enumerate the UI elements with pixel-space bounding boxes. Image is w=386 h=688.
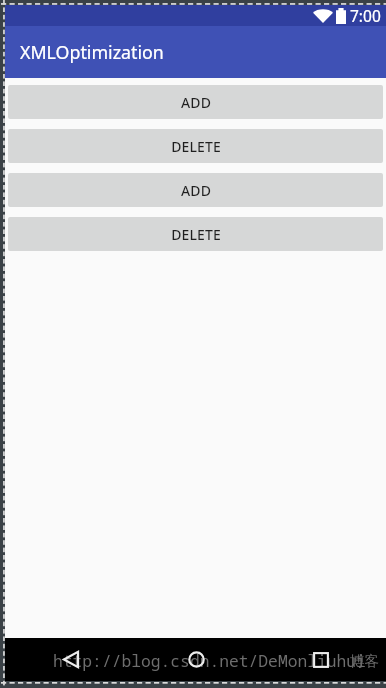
button[interactable]: DELETE xyxy=(8,129,383,163)
staticText: DELETE xyxy=(171,225,221,244)
staticText: XMLOptimization xyxy=(20,40,164,64)
staticText: http://blog.csdn.net/DeMonliuhui xyxy=(53,650,366,672)
button[interactable]: ADD xyxy=(8,85,383,119)
staticText: DELETE xyxy=(171,137,221,156)
staticText: 博客 xyxy=(350,652,379,670)
staticText: ADD xyxy=(181,181,211,200)
button[interactable]: Back xyxy=(63,651,79,668)
staticText: ADD xyxy=(181,93,211,112)
button[interactable]: DELETE xyxy=(8,217,383,251)
button[interactable]: Recent apps xyxy=(313,652,329,668)
button[interactable]: Home xyxy=(188,651,205,668)
button[interactable]: ADD xyxy=(8,173,383,207)
staticText: 7:00 xyxy=(350,5,381,26)
